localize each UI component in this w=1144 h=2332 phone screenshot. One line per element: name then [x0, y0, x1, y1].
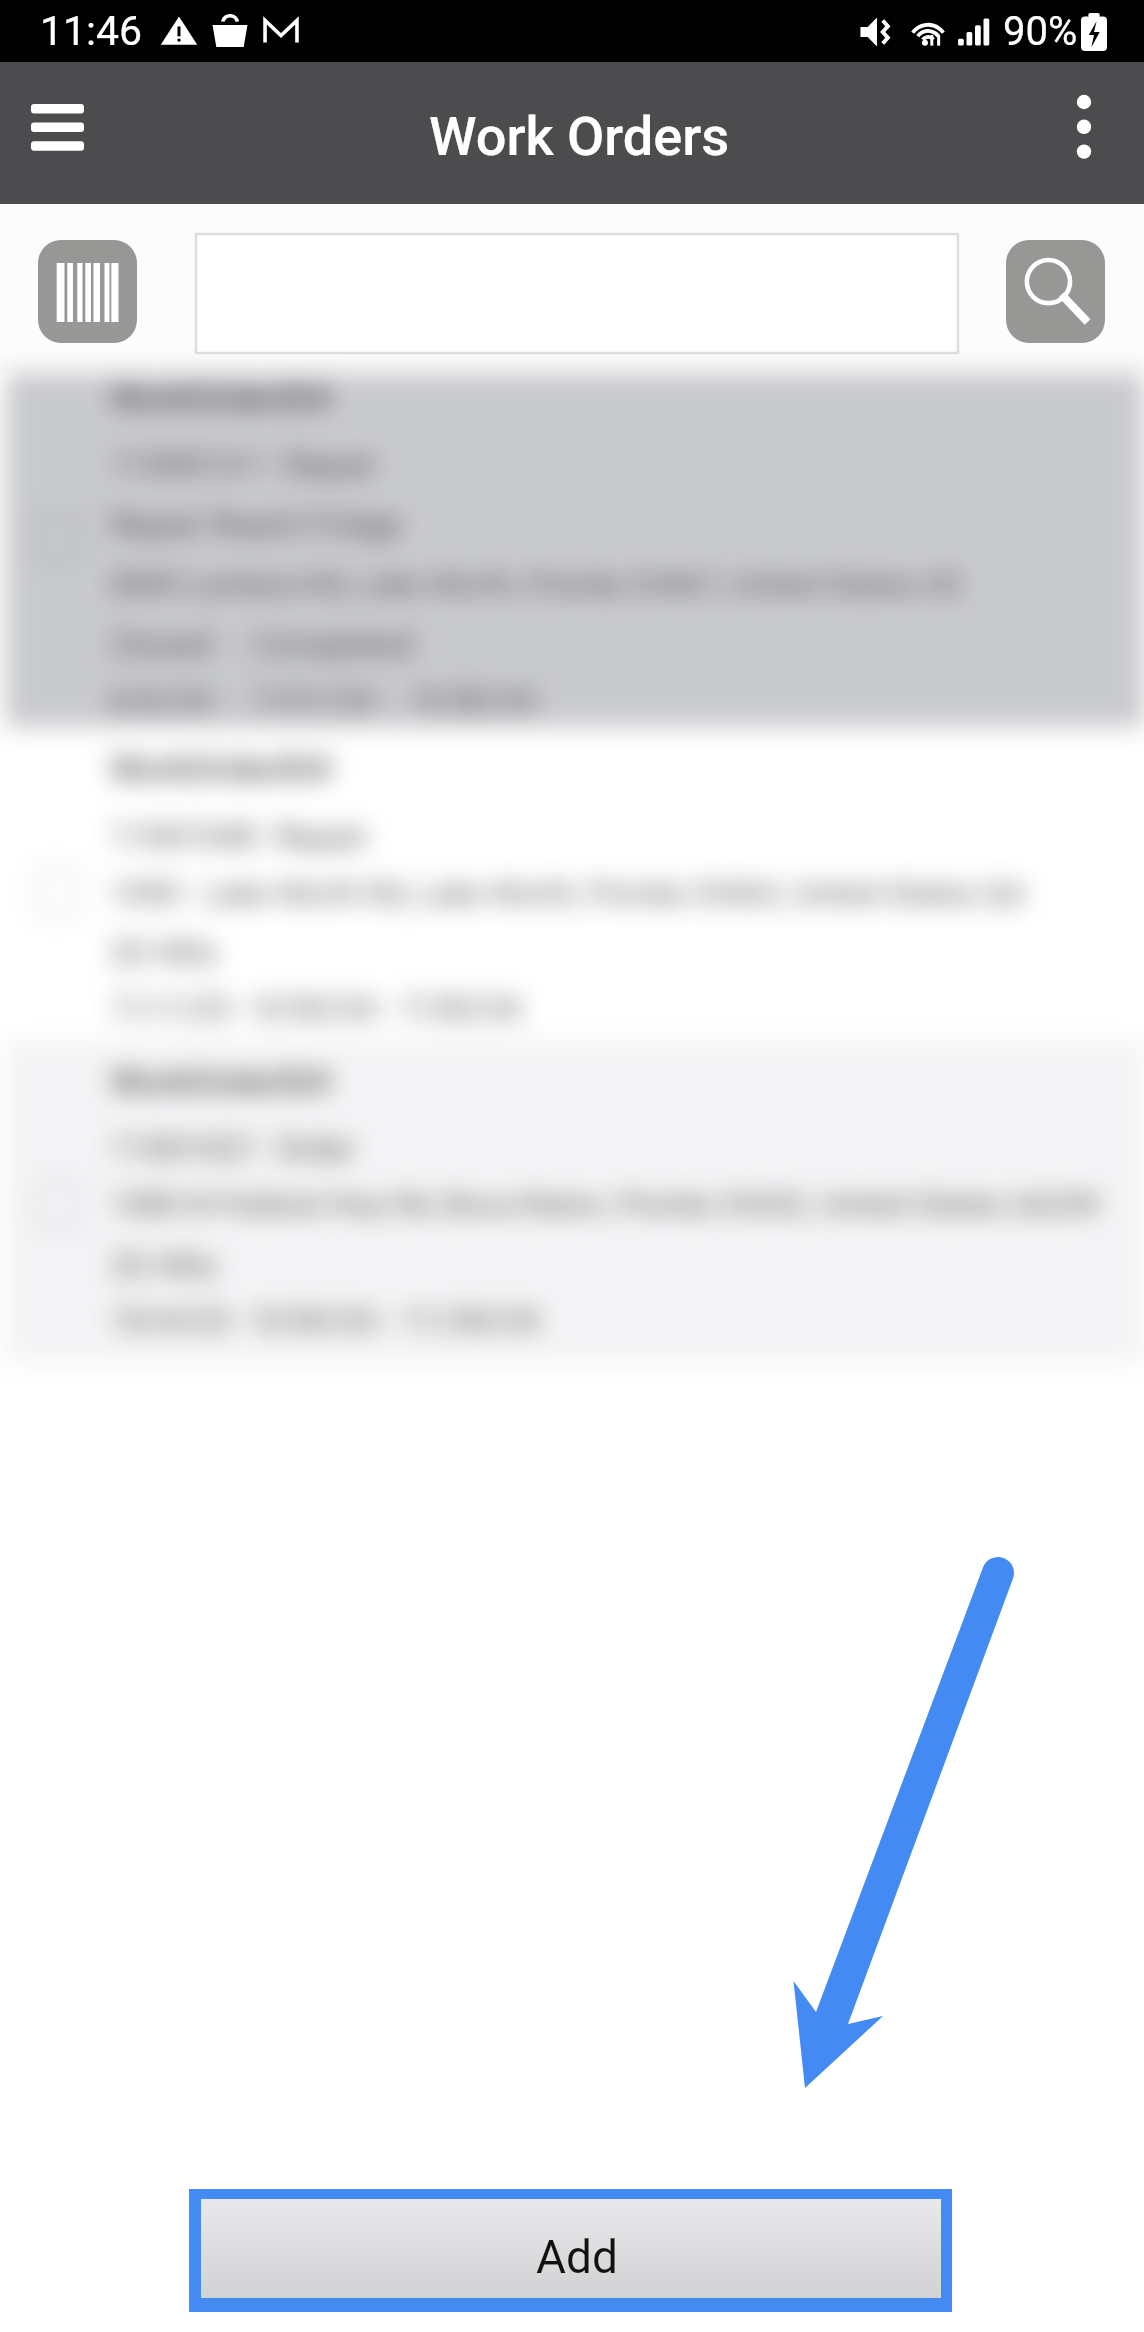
staticText: Closed - Completed [110, 625, 414, 664]
staticText: 32 HDs [110, 933, 218, 972]
staticText: 1080 N Federal Hwy Rd, Boca Raton, Flori… [110, 1186, 1100, 1222]
button[interactable]: More options [1040, 62, 1132, 204]
staticText: 6/6/24 - 7/31/24 - 9/28/24 [110, 681, 536, 720]
staticText: 1100014-1 Repair [110, 445, 378, 484]
button[interactable]: WorkOrderID# [6, 727, 1144, 1040]
button[interactable]: Search work orders text field [196, 234, 958, 353]
button[interactable]: WorkOrderID# [6, 1040, 1144, 1363]
button[interactable]: Search [1006, 240, 1105, 343]
staticText: Add [536, 2230, 618, 2284]
staticText: 11001021 Order [110, 1129, 356, 1168]
staticText: 11/1/23 - 9/30/24 - 7/30/24 [110, 989, 521, 1028]
button[interactable]: WorkOrderID# [6, 373, 1144, 727]
staticText: WorkOrderID# [110, 378, 332, 419]
staticText: WorkOrderID# [110, 749, 332, 790]
staticText: 11:46 [40, 7, 143, 55]
staticText: Repair Reach Fridge [110, 505, 403, 544]
staticText: 10/4/23 - 9/30/24 - 11/30/24 [110, 1301, 540, 1340]
staticText: 1050 - Lake Worth Rd, Lake Worth, Florid… [110, 875, 1026, 911]
staticText: 11001040 Repair [110, 817, 369, 856]
button[interactable]: Open navigation menu [6, 66, 109, 166]
button[interactable]: Add [189, 2189, 952, 2312]
staticText: 32 HDs [110, 1246, 218, 1285]
button[interactable]: Scan barcode [38, 240, 137, 343]
staticText: 8085 Lantana Rd, Lake Worth, Florida 334… [110, 566, 962, 602]
staticText: 90% [1003, 8, 1078, 55]
staticText: Work Orders [429, 105, 730, 168]
staticText: WorkOrderID# [110, 1062, 332, 1103]
